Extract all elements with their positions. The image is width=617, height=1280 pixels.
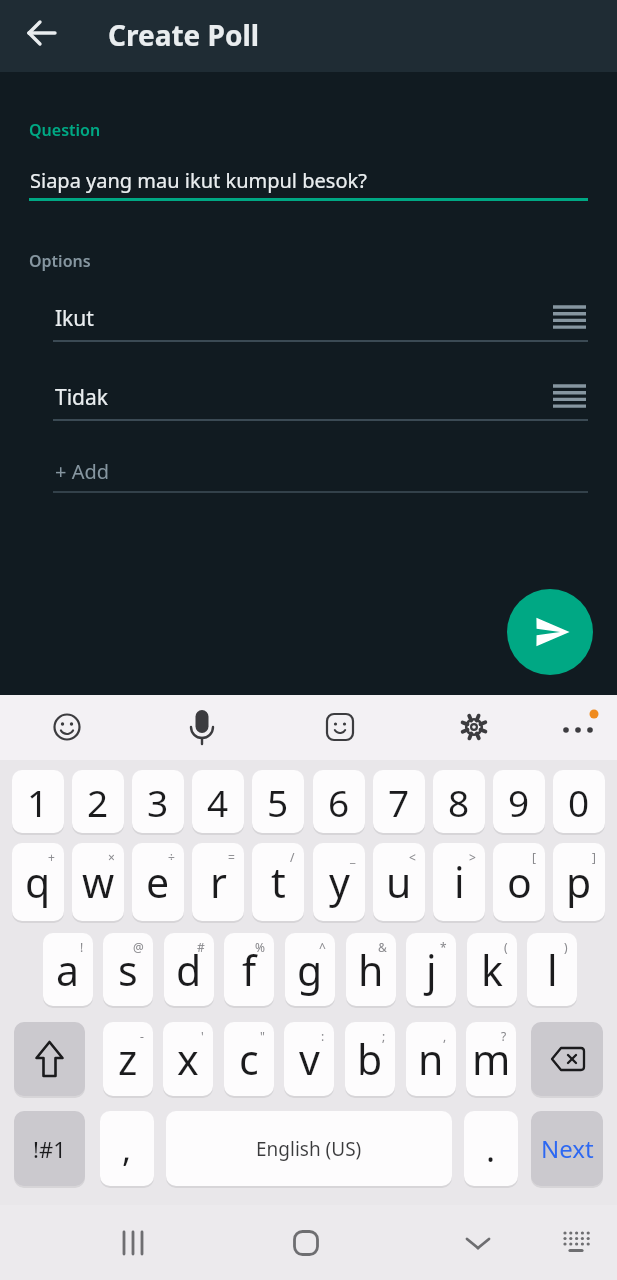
button[interactable]: g <box>285 933 335 1006</box>
staticText: v <box>299 1031 320 1087</box>
button[interactable]: !#1 <box>14 1111 85 1186</box>
button[interactable]: 4 <box>192 770 244 833</box>
button[interactable] <box>446 699 502 755</box>
button[interactable]: 2 <box>72 770 124 833</box>
button[interactable]: l <box>527 933 577 1006</box>
staticText: × <box>108 849 115 865</box>
staticText: , <box>443 1028 447 1044</box>
staticText: 5 <box>267 777 289 827</box>
staticText: l <box>547 942 558 998</box>
button[interactable]: 3 <box>132 770 184 833</box>
button[interactable] <box>174 699 230 755</box>
button[interactable]: + Add <box>53 450 588 493</box>
staticText: o <box>507 854 532 910</box>
staticText: = <box>228 849 235 865</box>
button[interactable] <box>507 589 593 675</box>
button[interactable]: a <box>43 933 93 1006</box>
button[interactable]: c <box>224 1022 274 1096</box>
staticText: Tidak <box>55 383 109 412</box>
button[interactable]: 7 <box>373 770 425 833</box>
button[interactable]: f <box>224 933 274 1006</box>
button[interactable]: English (US) <box>166 1111 452 1186</box>
button[interactable] <box>450 1215 506 1271</box>
staticText: Next <box>541 1132 594 1165</box>
staticText: i <box>454 854 465 910</box>
button[interactable]: , <box>100 1111 154 1186</box>
staticText: ! <box>80 939 84 955</box>
button[interactable]: e <box>132 843 184 921</box>
button[interactable]: 8 <box>433 770 485 833</box>
button[interactable]: n <box>406 1022 456 1096</box>
button[interactable]: s <box>103 933 153 1006</box>
button[interactable] <box>312 699 368 755</box>
staticText: % <box>255 939 265 955</box>
staticText: d <box>176 942 202 998</box>
button[interactable]: r <box>192 843 244 921</box>
staticText: 1 <box>27 777 49 827</box>
button[interactable]: Siapa yang mau ikut kumpul besok? <box>29 160 588 201</box>
button[interactable]: y <box>313 843 365 921</box>
staticText: 2 <box>87 777 109 827</box>
staticText: u <box>386 854 412 910</box>
staticText: ^ <box>319 939 326 955</box>
button[interactable]: 6 <box>313 770 365 833</box>
button[interactable]: w <box>72 843 124 921</box>
button[interactable] <box>105 1215 161 1271</box>
button[interactable]: t <box>252 843 304 921</box>
staticText: _ <box>350 849 356 865</box>
staticText: q <box>25 854 51 910</box>
staticText: English (US) <box>256 1136 362 1162</box>
button[interactable]: b <box>345 1022 395 1096</box>
staticText: e <box>146 854 170 910</box>
staticText: 9 <box>508 777 530 827</box>
staticText: f <box>242 942 257 998</box>
staticText: & <box>378 939 387 955</box>
button[interactable]: q <box>12 843 64 921</box>
staticText: ? <box>501 1028 507 1044</box>
staticText: n <box>418 1031 444 1087</box>
button[interactable] <box>39 699 95 755</box>
button[interactable] <box>548 1215 604 1271</box>
button[interactable]: 0 <box>553 770 605 833</box>
staticText: a <box>56 942 80 998</box>
staticText: - <box>140 1028 144 1044</box>
button[interactable]: k <box>467 933 517 1006</box>
button[interactable]: o <box>493 843 545 921</box>
staticText: # <box>197 939 205 955</box>
button[interactable] <box>552 699 608 755</box>
button[interactable]: x <box>163 1022 213 1096</box>
button[interactable]: d <box>164 933 214 1006</box>
staticText: w <box>82 854 115 910</box>
staticText: h <box>358 942 384 998</box>
button[interactable] <box>531 1022 603 1096</box>
button[interactable] <box>18 9 66 57</box>
button[interactable]: p <box>553 843 605 921</box>
staticText: Question <box>29 119 101 141</box>
staticText: j <box>426 942 437 998</box>
button[interactable]: u <box>373 843 425 921</box>
button[interactable] <box>14 1022 85 1096</box>
button[interactable]: 5 <box>252 770 304 833</box>
staticText: m <box>472 1031 511 1087</box>
button[interactable]: 9 <box>493 770 545 833</box>
staticText: p <box>566 854 592 910</box>
button[interactable]: . <box>464 1111 518 1186</box>
staticText: : <box>321 1028 325 1044</box>
button[interactable]: z <box>103 1022 153 1096</box>
staticText: < <box>409 849 416 865</box>
button[interactable]: v <box>284 1022 334 1096</box>
button[interactable]: Ikut <box>53 298 588 343</box>
button[interactable]: i <box>433 843 485 921</box>
staticText: y <box>329 854 350 910</box>
staticText: " <box>260 1028 265 1044</box>
button[interactable]: j <box>406 933 456 1006</box>
button[interactable]: Tidak <box>53 377 588 422</box>
button[interactable]: 1 <box>12 770 64 833</box>
button[interactable]: Next <box>531 1111 603 1186</box>
staticText: g <box>297 942 323 998</box>
button[interactable]: h <box>346 933 396 1006</box>
button[interactable] <box>278 1215 334 1271</box>
staticText: Siapa yang mau ikut kumpul besok? <box>30 167 367 194</box>
button[interactable]: m <box>466 1022 516 1096</box>
staticText: ÷ <box>168 849 175 865</box>
